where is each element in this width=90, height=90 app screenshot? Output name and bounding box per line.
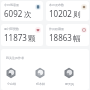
- staticText: 6092: [4, 8, 23, 19]
- other: 作品收藏量: [81, 27, 87, 33]
- staticText: 10202: [49, 8, 72, 19]
- button[interactable]: 今日阅读量: [1, 1, 43, 21]
- other: 小白猫: [6, 68, 16, 78]
- other: 今日阅读量: [35, 4, 41, 10]
- button[interactable]: 夏天风: [64, 68, 74, 86]
- staticText: 夏天风: [65, 82, 74, 86]
- staticText: 本月发布数: [49, 3, 64, 7]
- button[interactable]: 累计获赞数: [1, 24, 43, 46]
- staticText: 颗: [28, 34, 36, 43]
- other: 本月发布数: [81, 4, 87, 10]
- staticText: 18863: [49, 32, 72, 43]
- staticText: 累计获赞数: [4, 27, 19, 31]
- staticText: 今日阅读量: [4, 3, 19, 7]
- staticText: 幅: [73, 34, 81, 43]
- button[interactable]: 阿木林: [35, 68, 45, 86]
- staticText: 小白猫: [7, 82, 16, 86]
- button[interactable]: 小白猫: [6, 68, 16, 86]
- staticText: 次: [24, 10, 32, 19]
- other: 累计获赞数: [35, 27, 41, 33]
- staticText: 阿木林: [36, 82, 45, 86]
- staticText: 我关注的作者: [6, 56, 24, 60]
- staticText: 作品收藏量: [49, 27, 64, 31]
- other: 夏天风: [64, 68, 74, 78]
- staticText: 则: [73, 10, 81, 19]
- button[interactable]: 作品收藏量: [46, 24, 89, 46]
- other: 阿木林: [35, 68, 45, 78]
- staticText: 11873: [4, 32, 27, 43]
- button[interactable]: 本月发布数: [46, 1, 89, 21]
